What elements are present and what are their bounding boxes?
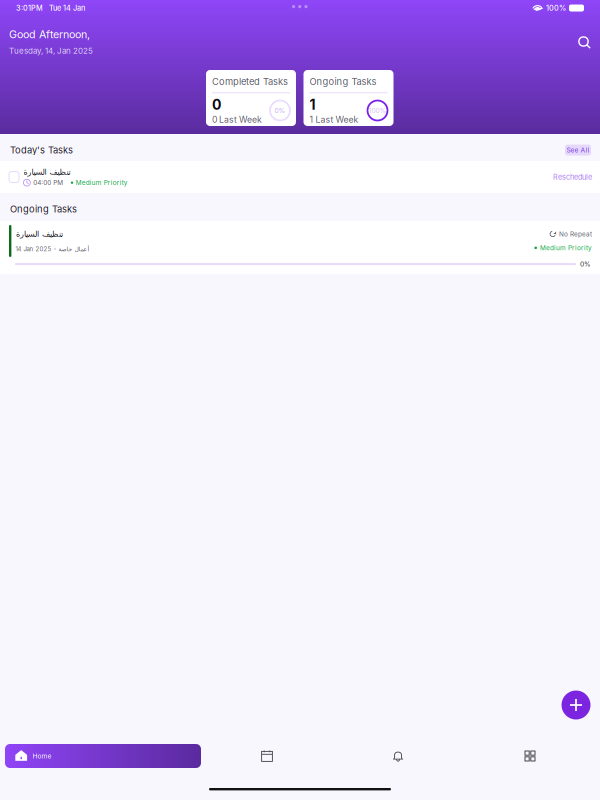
button[interactable]: Search (575, 33, 595, 53)
staticText: 0 Last Week (212, 114, 262, 125)
staticText: تنظيف السيارة (15, 229, 62, 238)
staticText: Ongoing Tasks (10, 203, 77, 215)
staticText: Today's Tasks (10, 144, 73, 156)
button[interactable]: More (515, 744, 545, 768)
staticText: Reschedule (553, 173, 592, 181)
staticText: No Repeat (559, 230, 592, 238)
staticText: 0% (580, 260, 591, 268)
staticText: 3:01PM Tue 14 Jan (16, 4, 85, 12)
button[interactable]: تنظيف السيارة (0, 161, 600, 193)
staticText: 04:00 PM (33, 179, 63, 186)
staticText: Medium Priority (76, 179, 128, 186)
staticText: 0 (212, 96, 221, 113)
button[interactable]: Calendar (252, 744, 282, 768)
button[interactable]: Add task (561, 690, 590, 719)
staticText: 100% (546, 4, 566, 12)
staticText: Home (32, 752, 51, 760)
button[interactable]: See All (565, 144, 591, 155)
button[interactable]: Notifications (383, 744, 413, 768)
staticText: Completed Tasks (212, 76, 288, 87)
staticText: Tuesday, 14, Jan 2025 (9, 46, 93, 56)
staticText: See All (566, 146, 589, 154)
staticText: Good Afternoon, (9, 28, 90, 41)
staticText: 14 Jan 2025 - أعمال خاصة (15, 245, 89, 253)
staticText: 0% (274, 106, 285, 115)
button[interactable]: Home (5, 744, 201, 768)
staticText: 1 (309, 96, 315, 113)
staticText: 100% (368, 106, 386, 115)
staticText: 1 Last Week (309, 114, 358, 125)
staticText: Ongoing Tasks (309, 76, 376, 87)
staticText: تنظيف السيارة (23, 167, 70, 177)
button[interactable]: تنظيف السيارة (0, 221, 600, 274)
staticText: Medium Priority (540, 244, 592, 252)
